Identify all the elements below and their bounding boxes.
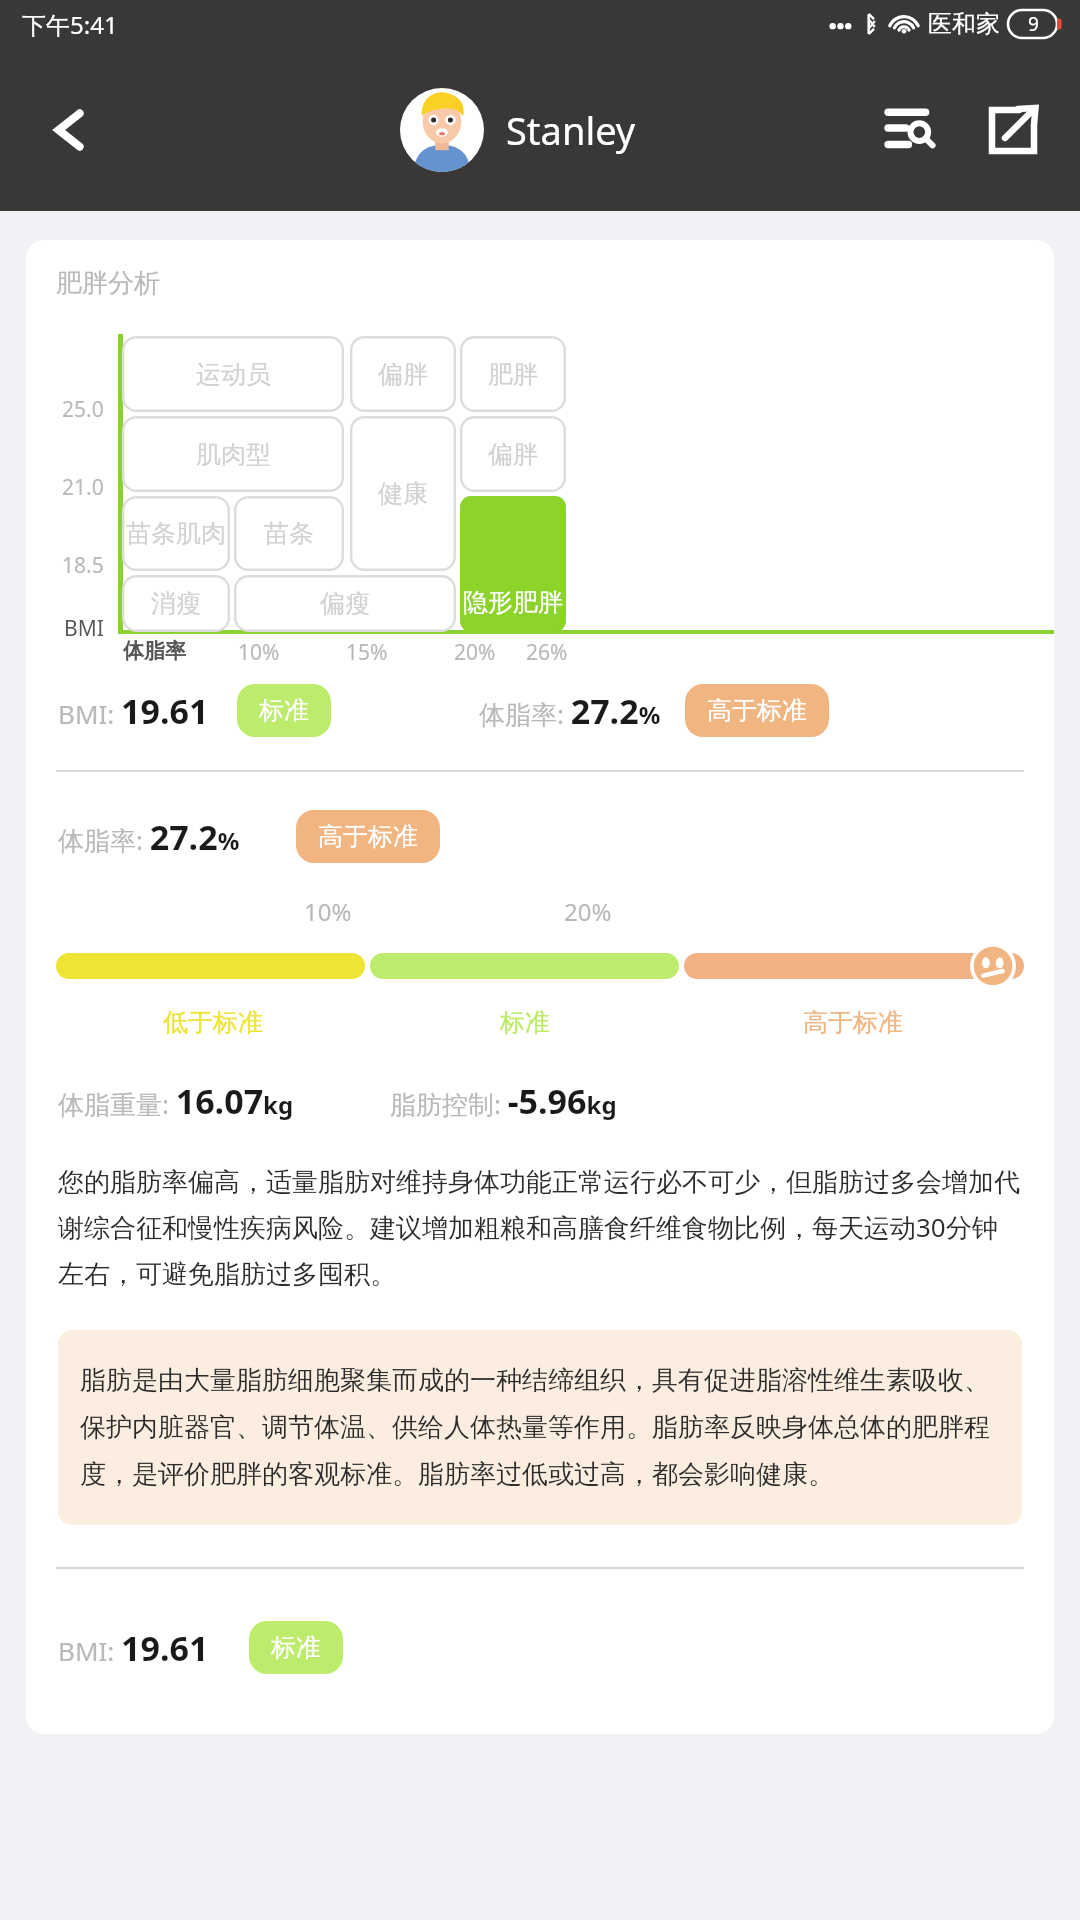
staticText: 下午5:41 — [22, 8, 118, 41]
button[interactable]: Share — [974, 91, 1052, 169]
staticText: 隐形肥胖 — [463, 587, 563, 618]
button[interactable]: Search records — [872, 91, 950, 169]
staticText: 10% — [304, 895, 352, 928]
button[interactable]: 隐形肥胖 — [460, 496, 566, 632]
staticText: 26% — [526, 638, 568, 667]
staticText: 高于标准 — [318, 821, 418, 852]
staticText: 10% — [238, 638, 280, 667]
staticText: 健康 — [378, 478, 428, 509]
staticText: 高于标准 — [803, 1007, 903, 1038]
staticText: 25.0 — [62, 395, 104, 424]
staticText: 苗条 — [264, 518, 314, 549]
button[interactable]: 标准 — [249, 1621, 343, 1674]
button[interactable]: Back — [34, 94, 106, 166]
staticText: 运动员 — [196, 359, 271, 390]
button[interactable]: 高于标准 — [685, 684, 829, 737]
staticText: 标准 — [500, 1007, 550, 1038]
button[interactable]: 偏胖 — [460, 416, 566, 492]
staticText: 脂肪是由大量脂肪细胞聚集而成的一种结缔组织，具有促进脂溶性维生素吸收、保护内脏器… — [80, 1364, 1000, 1491]
staticText: 21.0 — [62, 473, 104, 502]
staticText: BMI: 19.61 — [58, 1625, 209, 1671]
staticText: 体脂率 — [123, 638, 186, 664]
staticText: Stanley — [506, 104, 636, 156]
staticText: 偏胖 — [488, 439, 538, 470]
staticText: 体脂重量: 16.07kg — [58, 1078, 294, 1124]
button[interactable]: 肌肉型 — [122, 416, 344, 492]
staticText: BMI: 19.61 — [58, 688, 209, 734]
staticText: 偏胖 — [378, 359, 428, 390]
button[interactable]: 偏瘦 — [234, 575, 456, 632]
staticText: BMI — [64, 614, 104, 643]
staticText: 15% — [346, 638, 388, 667]
button[interactable]: 健康 — [350, 416, 456, 571]
staticText: 18.5 — [62, 551, 104, 580]
button[interactable]: 高于标准 — [296, 810, 440, 863]
staticText: 消瘦 — [151, 588, 201, 619]
staticText: 您的脂肪率偏高，适量脂肪对维持身体功能正常运行必不可少，但脂肪过多会增加代谢综合… — [58, 1166, 1022, 1290]
button[interactable]: 运动员 — [122, 336, 344, 412]
staticText: 20% — [454, 638, 496, 667]
staticText: 体脂率: 27.2% — [58, 814, 240, 860]
staticText: 苗条肌肉 — [126, 518, 226, 549]
staticText: 标准 — [271, 1632, 321, 1663]
staticText: 9 — [1028, 11, 1039, 37]
staticText: 标准 — [259, 695, 309, 726]
button[interactable]: 消瘦 — [122, 575, 230, 632]
staticText: 高于标准 — [707, 695, 807, 726]
button[interactable]: 苗条 — [234, 496, 344, 571]
staticText: 医和家 — [928, 9, 1000, 39]
staticText: 肌肉型 — [196, 439, 271, 470]
button[interactable]: 肥胖 — [460, 336, 566, 412]
staticText: 偏瘦 — [320, 588, 370, 619]
button[interactable]: Stanley — [400, 88, 636, 172]
staticText: 脂肪控制: -5.96kg — [390, 1078, 617, 1124]
button[interactable]: 偏胖 — [350, 336, 456, 412]
button[interactable]: 苗条肌肉 — [122, 496, 230, 571]
staticText: 20% — [564, 895, 612, 928]
staticText: 体脂率: 27.2% — [479, 688, 661, 734]
staticText: 肥胖分析 — [56, 267, 160, 300]
staticText: 低于标准 — [163, 1007, 263, 1038]
staticText: 肥胖 — [488, 359, 538, 390]
button[interactable]: 标准 — [237, 684, 331, 737]
